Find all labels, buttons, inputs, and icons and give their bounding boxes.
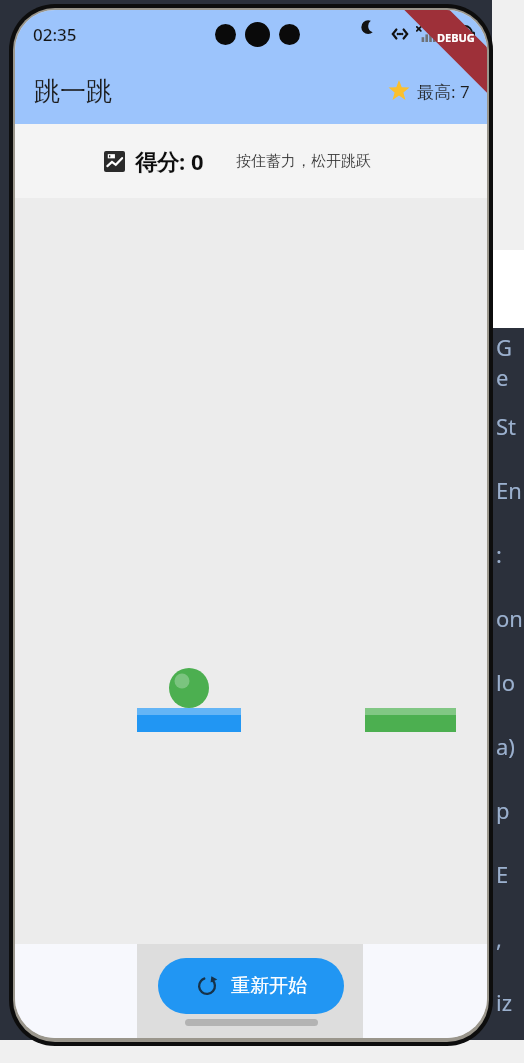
other: Do not disturb <box>366 25 384 43</box>
staticText: 重新开始 <box>231 974 307 998</box>
staticText: St <box>496 411 517 441</box>
staticText: : <box>496 539 502 569</box>
staticText: a) <box>496 731 515 761</box>
staticText: lo <box>496 667 515 697</box>
staticText: 跳一跳 <box>34 75 112 108</box>
staticText: 按住蓄力，松开跳跃 <box>236 152 371 171</box>
staticText: 02:35 <box>33 23 77 46</box>
staticText: E <box>496 859 509 889</box>
staticText: p <box>496 795 510 825</box>
button[interactable] <box>15 198 487 944</box>
other: ADB connected <box>391 25 409 43</box>
other: Signal <box>416 26 436 42</box>
staticText: 100 <box>449 28 467 42</box>
staticText: on <box>496 603 523 633</box>
button[interactable]: 重新开始 <box>158 958 344 1014</box>
other: Battery 100 percent <box>443 26 475 43</box>
staticText: iz <box>496 987 513 1017</box>
staticText: DEBUG <box>437 30 475 45</box>
staticText: , <box>496 923 502 953</box>
staticText: En <box>496 475 522 505</box>
staticText: 得分: 0 <box>135 146 204 176</box>
staticText: Ge <box>496 332 524 392</box>
staticText: 最高: 7 <box>417 80 470 103</box>
